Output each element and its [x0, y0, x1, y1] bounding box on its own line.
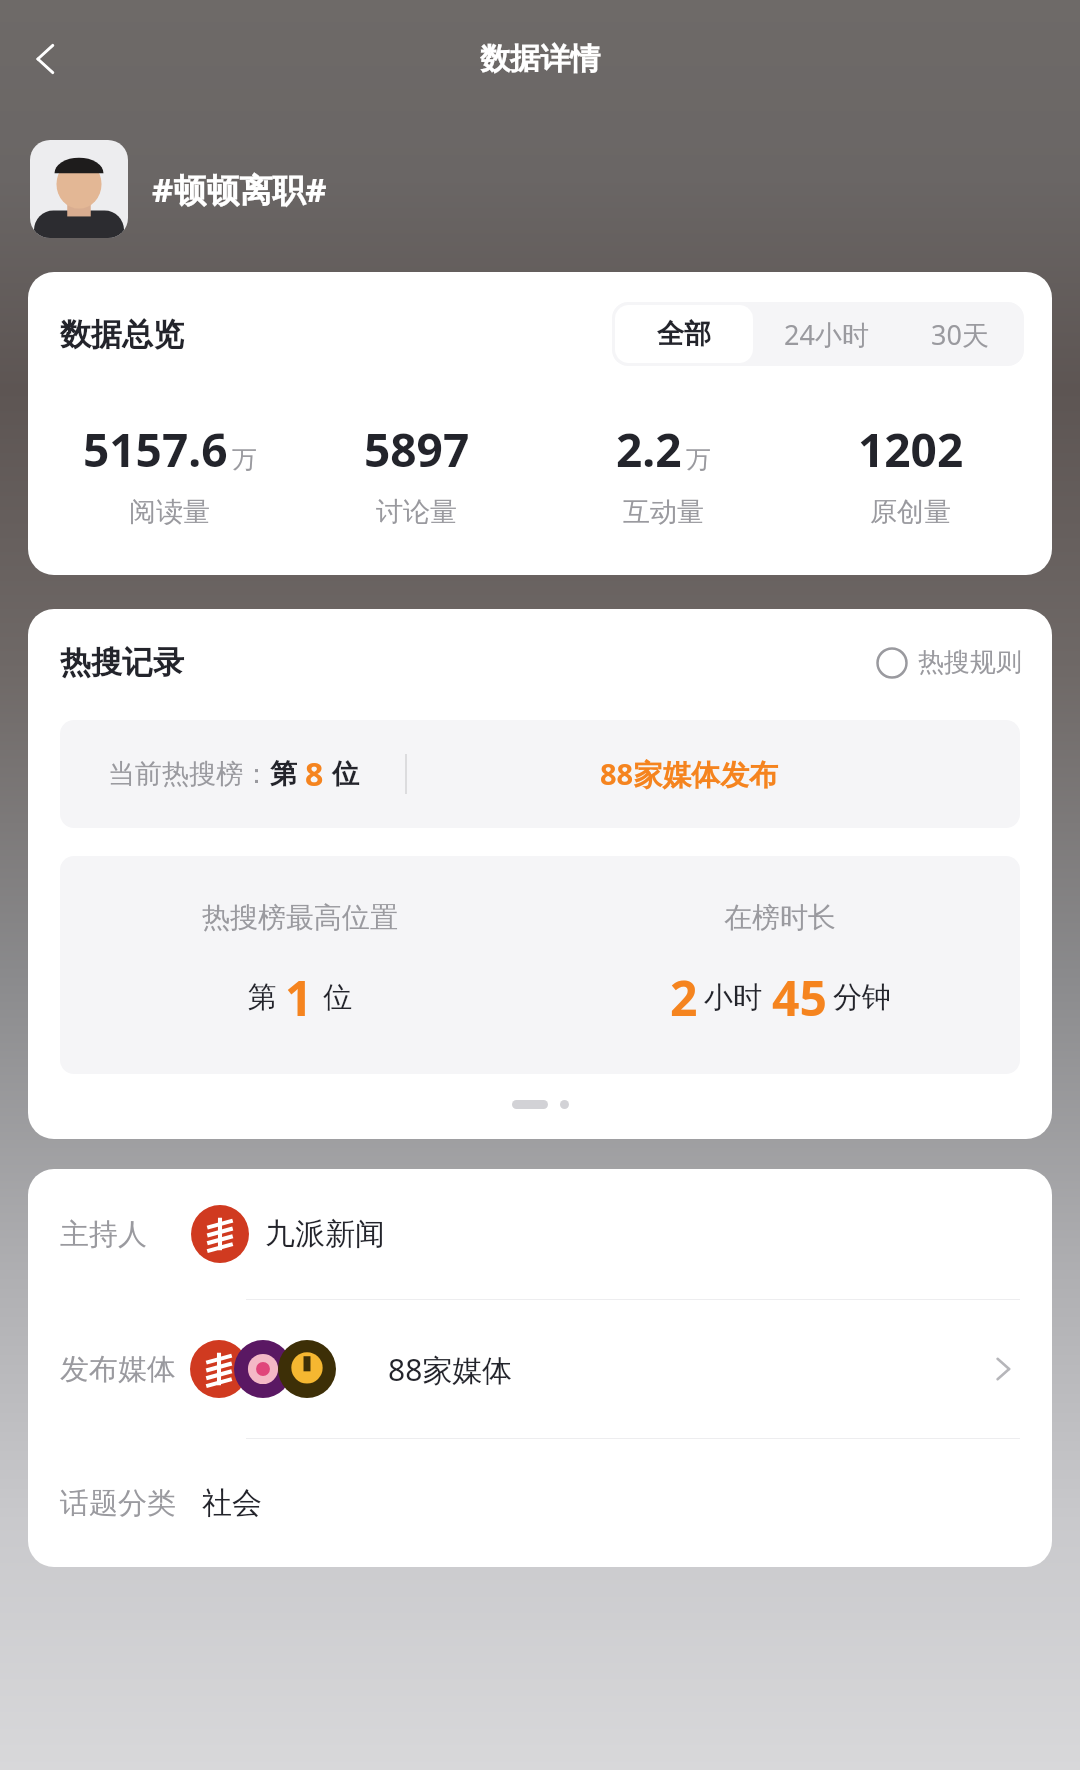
staticText: 第 — [248, 979, 277, 1016]
button[interactable]: 5897 — [293, 418, 540, 529]
button[interactable]: 全部 — [615, 305, 753, 363]
staticText: 8 — [305, 752, 324, 796]
staticText: 原创量 — [870, 495, 951, 529]
staticText: 全部 — [657, 317, 711, 351]
staticText: 万 — [686, 444, 711, 475]
button[interactable]: 5157.6 — [46, 418, 293, 529]
staticText: 5897 — [364, 418, 470, 481]
staticText: 当前热搜榜： — [108, 757, 270, 791]
staticText: 发布媒体 — [60, 1351, 176, 1388]
staticText: 分钟 — [833, 979, 891, 1016]
staticText: 热搜记录 — [60, 643, 184, 682]
staticText: 万 — [232, 444, 257, 475]
staticText: 45 — [772, 965, 827, 1030]
button[interactable]: 发布媒体 — [28, 1300, 1052, 1438]
button[interactable]: 2.2 — [540, 418, 787, 529]
staticText: 热搜规则 — [918, 646, 1022, 679]
button[interactable]: #顿顿离职# — [30, 140, 1080, 238]
staticText: 话题分类 — [60, 1485, 176, 1522]
staticText: 88家媒体发布 — [600, 754, 779, 794]
staticText: 数据总览 — [60, 315, 184, 354]
staticText: 30天 — [931, 316, 989, 353]
staticText: 第 — [270, 757, 297, 791]
staticText: 社会 — [202, 1484, 262, 1522]
staticText: 88家媒体 — [388, 1349, 513, 1390]
other: More — [986, 1352, 1020, 1386]
staticText: 在榜时长 — [724, 900, 836, 935]
staticText: 1 — [285, 965, 313, 1030]
staticText: #顿顿离职# — [152, 167, 327, 212]
staticText: 位 — [323, 979, 352, 1016]
staticText: 2 — [670, 965, 698, 1030]
staticText: 24小时 — [784, 316, 869, 353]
staticText: 位 — [332, 757, 359, 791]
button[interactable]: 1202 — [787, 418, 1034, 529]
button[interactable]: Back — [10, 23, 82, 95]
button[interactable]: 24小时 — [756, 302, 896, 366]
staticText: 2.2 — [616, 418, 682, 481]
staticText: 阅读量 — [129, 495, 210, 529]
staticText: 5157.6 — [83, 418, 228, 481]
button[interactable]: 30天 — [896, 302, 1024, 366]
staticText: 九派新闻 — [265, 1215, 385, 1253]
staticText: 主持人 — [60, 1216, 147, 1253]
staticText: 1202 — [858, 418, 964, 481]
button[interactable]: 话题分类 — [28, 1439, 1052, 1567]
staticText: 热搜榜最高位置 — [202, 900, 398, 935]
staticText: 数据详情 — [480, 40, 600, 78]
staticText: 小时 — [704, 979, 762, 1016]
button[interactable]: 主持人 — [28, 1169, 1052, 1299]
button[interactable]: 热搜规则 — [876, 646, 1022, 679]
staticText: 互动量 — [623, 495, 704, 529]
staticText: 讨论量 — [376, 495, 457, 529]
